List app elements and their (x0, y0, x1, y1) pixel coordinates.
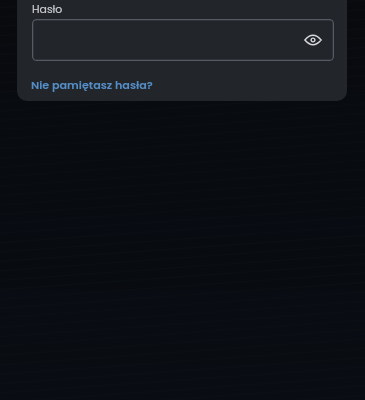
button[interactable]: Show password (299, 26, 327, 54)
staticText: Nie pamiętasz hasła? (31, 77, 153, 93)
staticText: Hasło (32, 2, 63, 17)
button[interactable]: Nie pamiętasz hasła? (31, 77, 153, 93)
button[interactable]: Show password (32, 19, 334, 61)
